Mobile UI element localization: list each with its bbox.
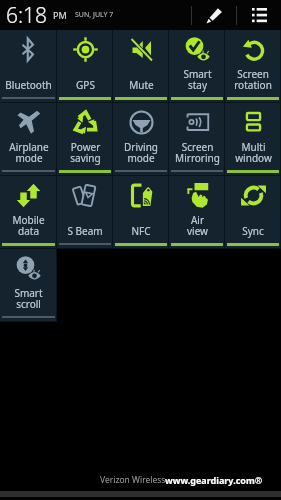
staticText: Multi window [235, 140, 272, 165]
button[interactable]: Smart scroll [0, 249, 57, 322]
button[interactable]: NFC [113, 176, 169, 249]
staticText: S Beam [67, 224, 103, 238]
staticText: Power saving [70, 140, 101, 165]
button[interactable]: Driving mode [113, 103, 169, 176]
staticText: NFC [131, 224, 151, 238]
staticText: Screen Mirroring [175, 140, 220, 165]
button[interactable]: Screen Mirroring [169, 103, 225, 176]
staticText: Screen rotation [234, 67, 272, 92]
button[interactable]: Multi window [225, 103, 281, 176]
staticText: Mobile data [12, 213, 45, 238]
staticText: PM [53, 9, 67, 21]
staticText: Smart scroll [14, 286, 43, 311]
button[interactable]: GPS [57, 30, 113, 103]
staticText: Mute [129, 78, 154, 92]
button[interactable]: Notifications list [237, 0, 281, 30]
button[interactable]: Mute [113, 30, 169, 103]
staticText: GPS [76, 78, 95, 92]
button[interactable]: Edit quick settings [192, 0, 236, 30]
button[interactable]: Air view [169, 176, 225, 249]
button[interactable]: Airplane mode [0, 103, 57, 176]
button[interactable]: Sync [225, 176, 281, 249]
staticText: Smart stay [183, 67, 212, 92]
staticText: Air view [187, 213, 208, 238]
staticText: Bluetooth [5, 78, 52, 92]
staticText: Sync [242, 224, 264, 238]
staticText: SUN, JULY 7 [75, 10, 114, 20]
button[interactable]: Power saving [57, 103, 113, 176]
button[interactable]: Screen rotation [225, 30, 281, 103]
staticText: Driving mode [124, 140, 158, 165]
staticText: Verizon Wireless [100, 474, 166, 486]
staticText: 6:18 [6, 1, 48, 30]
button[interactable]: Smart stay [169, 30, 225, 103]
staticText: www.geardiary.com® [165, 474, 263, 486]
staticText: Airplane mode [9, 140, 49, 165]
button[interactable]: S Beam [57, 176, 113, 249]
button[interactable]: Mobile data [0, 176, 57, 249]
button[interactable]: Bluetooth [0, 30, 57, 103]
